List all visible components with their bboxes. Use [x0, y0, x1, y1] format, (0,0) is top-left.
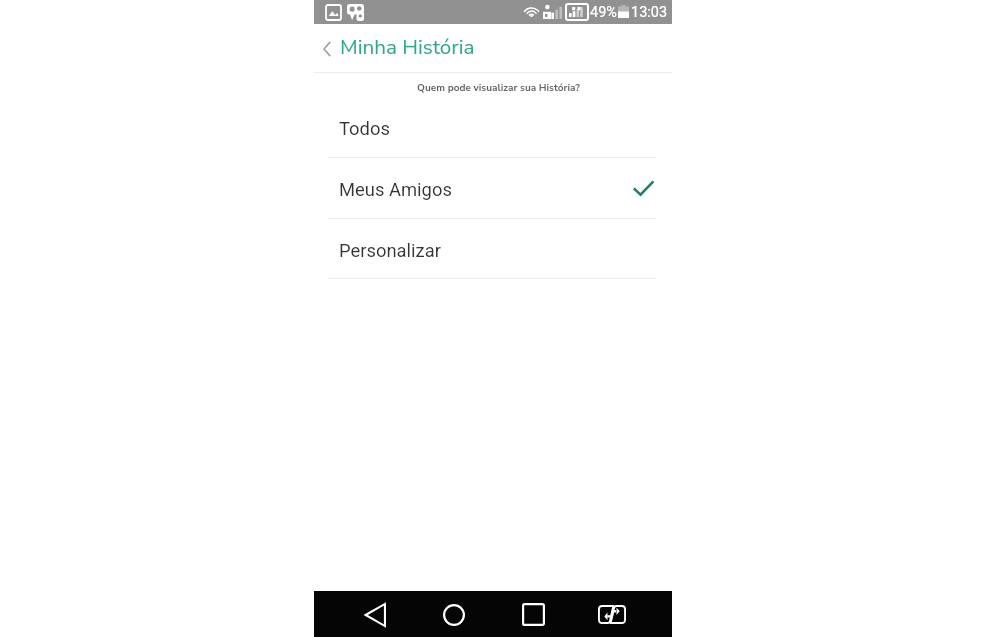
button[interactable]: Back: [351, 591, 399, 637]
staticText: Minha História: [340, 33, 475, 61]
button[interactable]: Personalizar: [314, 219, 672, 278]
button[interactable]: Meus Amigos: [314, 158, 672, 218]
staticText: 13:03: [631, 4, 668, 21]
button[interactable]: Back: [314, 24, 340, 73]
staticText: Todos: [339, 118, 390, 140]
staticText: Quem pode visualizar sua História?: [417, 81, 580, 95]
button[interactable]: Split screen: [588, 591, 636, 637]
staticText: 49%: [590, 4, 617, 21]
button[interactable]: Todos: [314, 97, 672, 157]
button[interactable]: Home: [430, 591, 478, 637]
button[interactable]: Recents: [509, 591, 557, 637]
staticText: Meus Amigos: [339, 179, 452, 201]
staticText: Personalizar: [339, 240, 441, 262]
